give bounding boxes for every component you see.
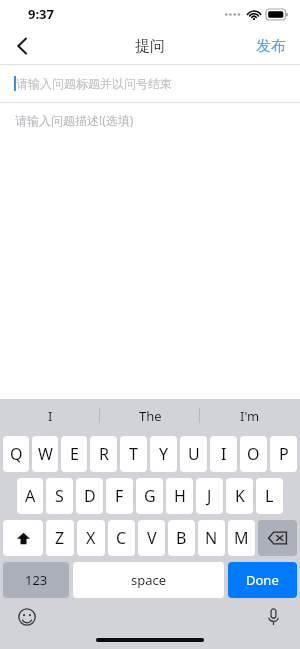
button[interactable]: D <box>76 478 103 514</box>
button[interactable]: N <box>198 520 225 556</box>
button[interactable]: Backspace <box>258 520 297 556</box>
staticText: G <box>144 485 156 507</box>
button[interactable]: U <box>180 436 207 472</box>
button[interactable]: E <box>61 436 87 472</box>
button[interactable]: L <box>256 478 283 514</box>
staticText: J <box>207 485 212 507</box>
button[interactable]: The <box>100 399 200 432</box>
staticText: 请输入问题标题并以问号结束 <box>16 76 172 91</box>
button[interactable]: S <box>46 478 73 514</box>
button[interactable]: G <box>136 478 163 514</box>
staticText: V <box>147 527 157 549</box>
staticText: 提问 <box>135 37 165 56</box>
button[interactable]: P <box>270 436 297 472</box>
staticText: The <box>139 407 162 425</box>
button[interactable]: R <box>90 436 117 472</box>
staticText: I <box>48 407 53 425</box>
button[interactable]: F <box>106 478 133 514</box>
staticText: M <box>234 527 249 549</box>
button[interactable]: Q <box>3 436 29 472</box>
staticText: X <box>86 527 96 549</box>
button[interactable]: Done <box>228 562 297 598</box>
staticText: I'm <box>240 407 260 425</box>
staticText: 123 <box>25 571 48 589</box>
button[interactable]: I <box>0 399 100 432</box>
button[interactable]: 请输入问题描述!(选填) <box>0 103 300 137</box>
staticText: I <box>221 443 227 465</box>
button[interactable]: K <box>226 478 253 514</box>
button[interactable]: X <box>77 520 105 556</box>
staticText: K <box>235 485 245 507</box>
button[interactable]: J <box>196 478 223 514</box>
button[interactable]: T <box>120 436 147 472</box>
button[interactable]: space <box>73 562 224 598</box>
staticText: Done <box>246 571 279 589</box>
staticText: D <box>84 485 96 507</box>
button[interactable]: C <box>108 520 135 556</box>
staticText: A <box>25 485 36 507</box>
button[interactable]: O <box>240 436 267 472</box>
button[interactable]: Z <box>46 520 74 556</box>
button[interactable]: B <box>168 520 195 556</box>
button[interactable]: Dictation <box>260 604 286 630</box>
staticText: C <box>116 527 127 549</box>
staticText: Q <box>10 443 23 465</box>
button[interactable]: 发布 <box>242 28 300 64</box>
staticText: N <box>205 527 218 549</box>
button[interactable]: Emoji <box>14 604 40 630</box>
staticText: space <box>131 571 167 589</box>
staticText: S <box>55 485 64 507</box>
staticText: B <box>176 527 187 549</box>
button[interactable]: Y <box>150 436 177 472</box>
button[interactable]: W <box>32 436 58 472</box>
staticText: O <box>247 443 260 465</box>
staticText: E <box>70 443 79 465</box>
button[interactable]: A <box>17 478 43 514</box>
staticText: W <box>38 443 53 465</box>
staticText: 9:37 <box>28 5 54 23</box>
button[interactable]: I <box>210 436 237 472</box>
button[interactable]: H <box>166 478 193 514</box>
button[interactable]: M <box>228 520 255 556</box>
staticText: L <box>265 485 274 507</box>
staticText: H <box>174 485 186 507</box>
staticText: P <box>279 443 289 465</box>
button[interactable]: V <box>138 520 165 556</box>
staticText: Y <box>159 443 169 465</box>
staticText: F <box>115 485 124 507</box>
button[interactable]: Shift <box>3 520 43 556</box>
staticText: 请输入问题描述!(选填) <box>15 112 134 128</box>
button[interactable]: 请输入问题标题并以问号结束 <box>0 65 300 102</box>
staticText: U <box>188 443 200 465</box>
button[interactable]: I'm <box>200 399 300 432</box>
button[interactable]: Back <box>0 28 44 64</box>
button[interactable]: 123 <box>3 562 69 598</box>
staticText: R <box>99 443 109 465</box>
staticText: T <box>129 443 138 465</box>
staticText: Z <box>55 527 65 549</box>
staticText: 发布 <box>256 37 286 56</box>
